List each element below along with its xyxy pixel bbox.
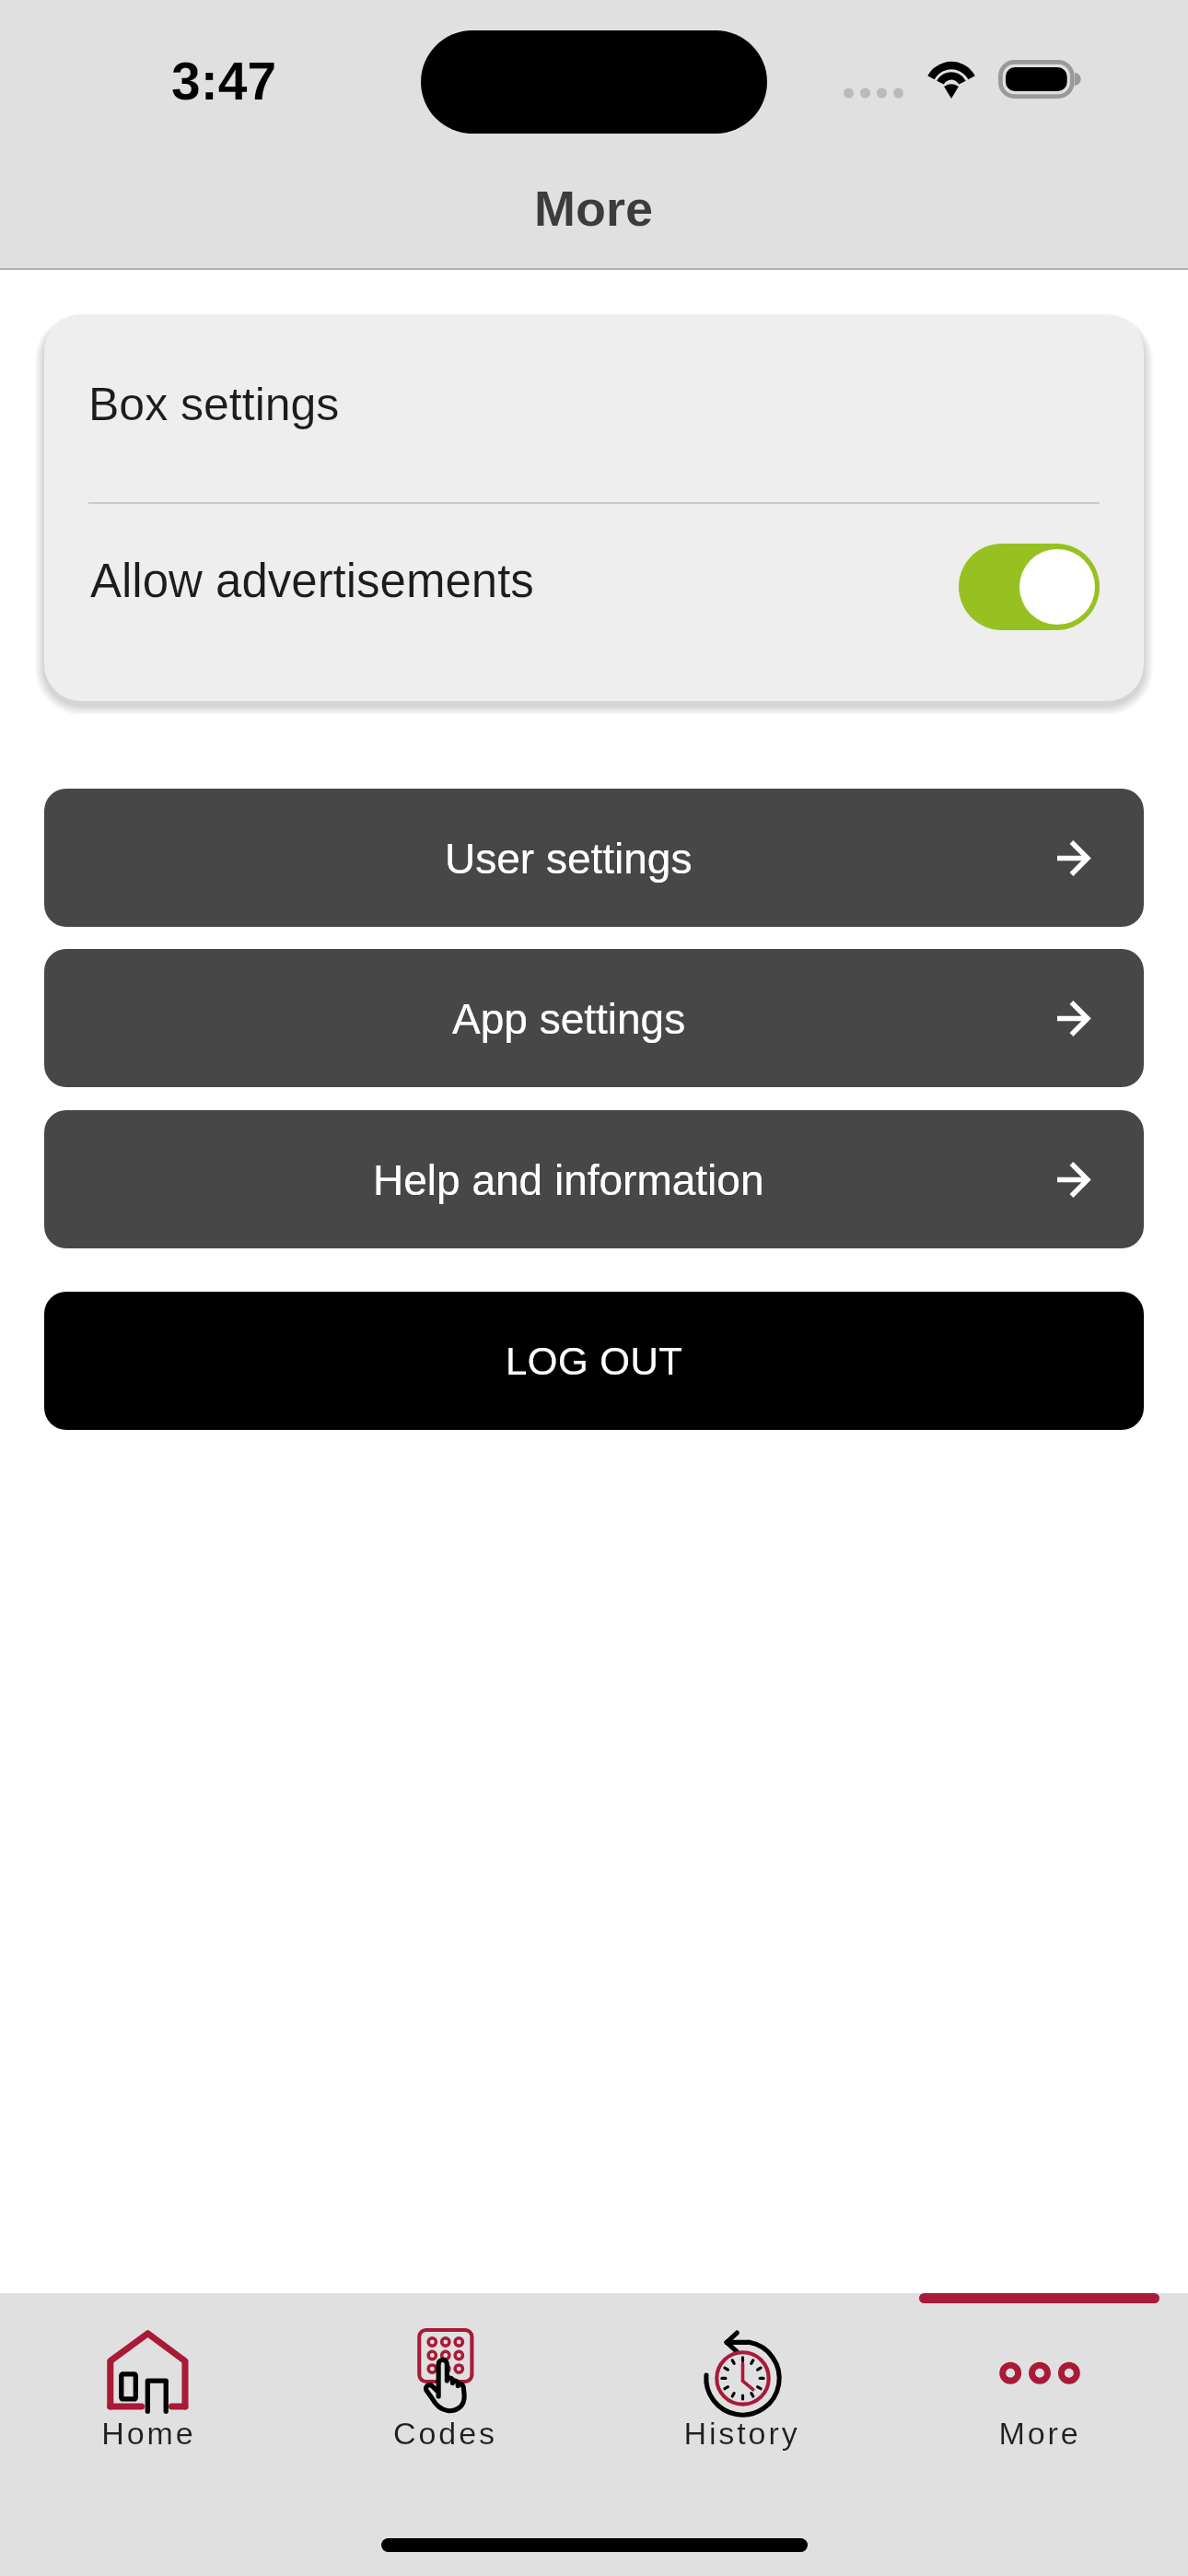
button[interactable]: App settings [44,949,1144,1087]
staticText: History [683,2416,800,2451]
staticText: 3:47 [171,52,277,111]
button[interactable]: User settings [44,789,1144,927]
staticText: App settings [452,995,686,1042]
staticText: More [998,2416,1081,2451]
button[interactable]: Codes [297,2293,593,2505]
staticText: LOG OUT [506,1340,683,1383]
button[interactable]: Home [0,2293,297,2505]
staticText: Box settings [88,379,340,430]
button[interactable]: Box settings [44,314,1144,502]
staticText: Codes [393,2416,497,2451]
button[interactable]: Help and information [44,1110,1144,1248]
staticText: User settings [445,835,693,882]
staticText: Allow advertisements [90,555,534,607]
button[interactable]: More [891,2293,1188,2505]
button[interactable]: Allow advertisements [44,504,1144,670]
button[interactable]: Allow advertisements toggle [959,544,1100,630]
button[interactable]: LOG OUT [44,1292,1144,1430]
staticText: Home [101,2416,196,2451]
button[interactable]: History [593,2293,891,2505]
staticText: More [534,181,654,236]
staticText: Help and information [373,1156,764,1203]
